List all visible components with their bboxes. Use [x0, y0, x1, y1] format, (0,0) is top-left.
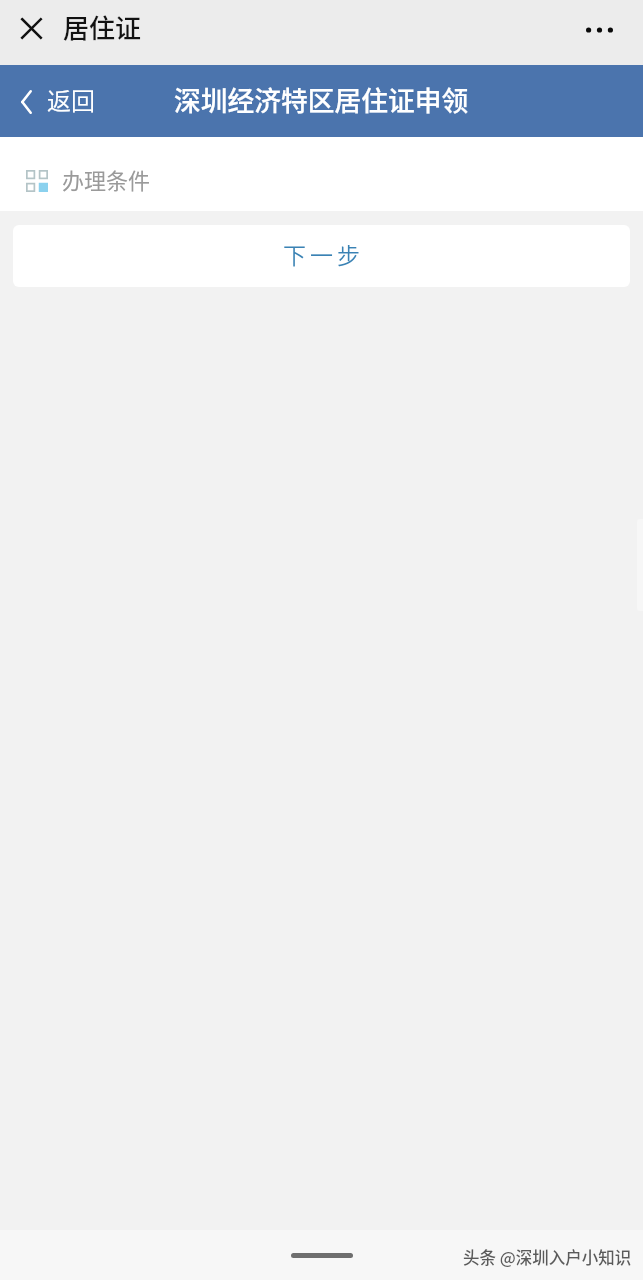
button[interactable]: 返回 [0, 66, 107, 137]
button[interactable]: 办理条件 [0, 157, 177, 201]
staticText: 下一步 [281, 237, 362, 270]
button[interactable]: Home [291, 1253, 353, 1258]
staticText: 深圳经济特区居住证申领 [174, 80, 469, 119]
staticText: 头条 @深圳入户小知识 [463, 1245, 632, 1269]
staticText: 返回 [47, 82, 95, 117]
staticText: 居住证 [63, 8, 142, 46]
button[interactable]: Close [10, 7, 52, 49]
button[interactable]: 下一步 [13, 225, 630, 287]
button[interactable]: More options [573, 7, 625, 53]
staticText: 办理条件 [62, 163, 151, 195]
